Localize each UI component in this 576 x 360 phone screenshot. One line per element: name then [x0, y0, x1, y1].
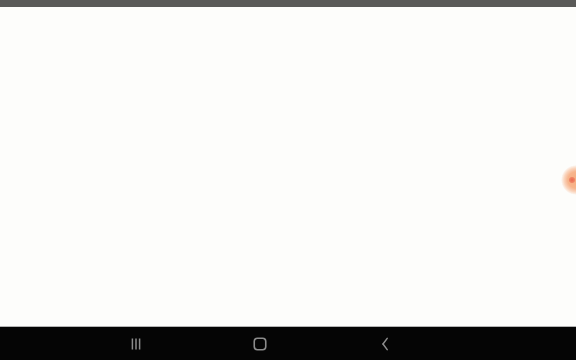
button[interactable]: Scroll position indicator: [558, 162, 576, 198]
button[interactable]: Recent apps: [108, 327, 164, 360]
button[interactable]: Back: [358, 327, 414, 360]
button[interactable]: Home: [232, 327, 288, 360]
